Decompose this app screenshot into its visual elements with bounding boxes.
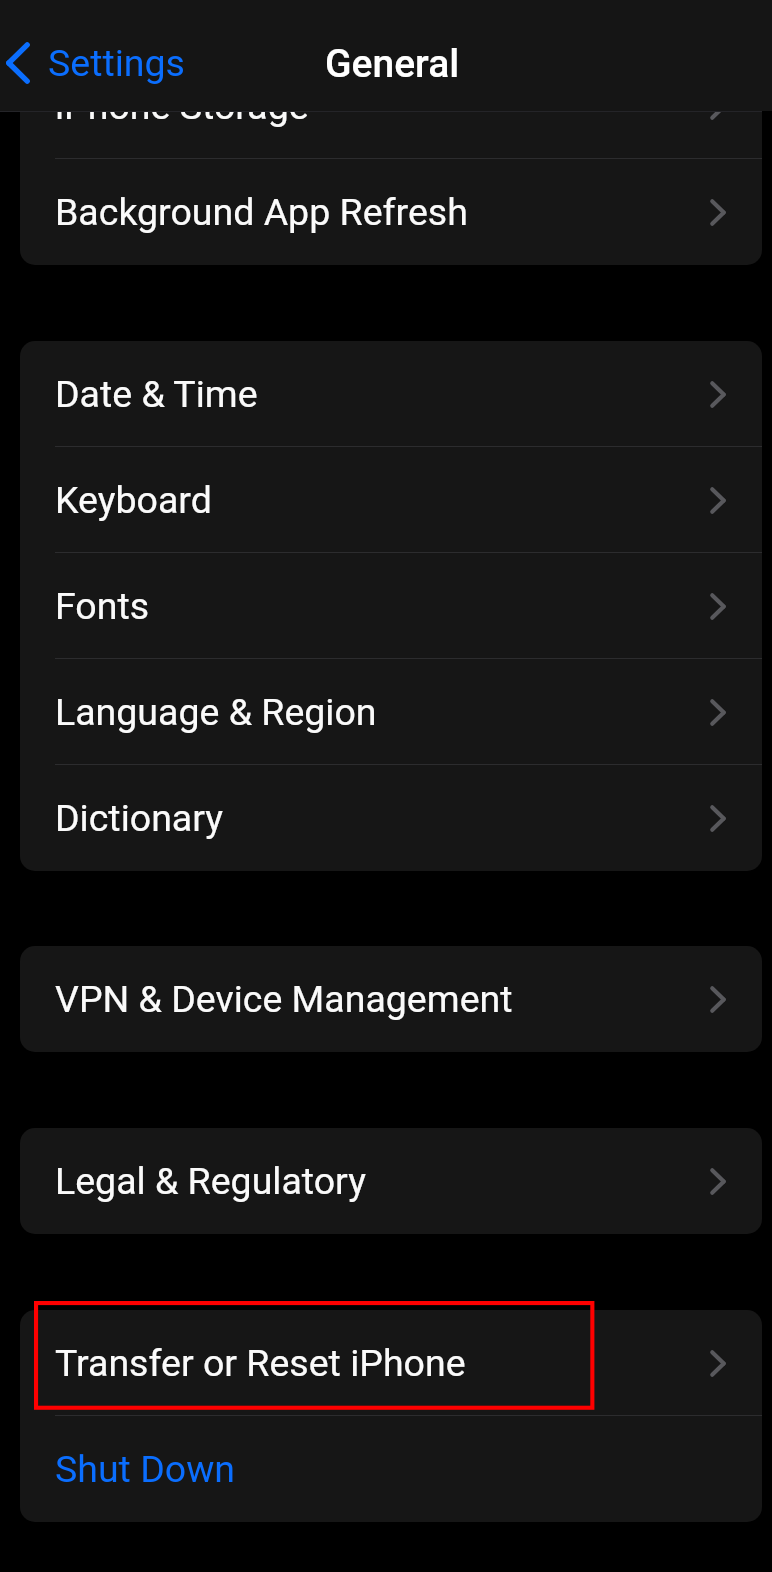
button[interactable]: Background App Refresh [20, 159, 762, 265]
staticText: VPN & Device Management [55, 977, 513, 1021]
button[interactable]: Keyboard [20, 447, 762, 553]
button[interactable]: Back to Settings [0, 37, 193, 89]
button[interactable]: VPN & Device Management [20, 946, 762, 1052]
button[interactable]: Language & Region [20, 659, 762, 765]
button[interactable]: Fonts [20, 553, 762, 659]
staticText: Date & Time [55, 372, 258, 416]
staticText: Keyboard [55, 478, 212, 522]
button[interactable]: Shut Down [20, 1416, 762, 1522]
button[interactable]: iPhone Storage [20, 53, 762, 159]
staticText: Language & Region [55, 690, 377, 734]
staticText: Settings [48, 41, 185, 85]
staticText: Fonts [55, 584, 150, 628]
staticText: iPhone Storage [55, 84, 309, 128]
button[interactable]: Legal & Regulatory [20, 1128, 762, 1234]
button[interactable]: Dictionary [20, 765, 762, 871]
staticText: Background App Refresh [55, 190, 468, 234]
staticText: General [325, 41, 460, 87]
staticText: Transfer or Reset iPhone [55, 1341, 466, 1385]
button[interactable]: Transfer or Reset iPhone [20, 1310, 762, 1416]
staticText: Dictionary [55, 796, 224, 840]
button[interactable]: Date & Time [20, 341, 762, 447]
staticText: Shut Down [55, 1447, 236, 1491]
staticText: Legal & Regulatory [55, 1159, 366, 1203]
